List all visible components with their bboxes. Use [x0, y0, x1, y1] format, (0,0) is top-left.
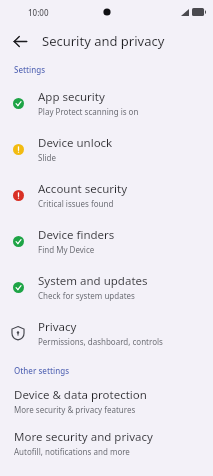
staticText: 10:00	[28, 7, 49, 18]
button[interactable]: App security	[0, 80, 213, 126]
staticText: Autofill, notifications and more	[14, 446, 130, 457]
staticText: System and updates	[38, 273, 148, 289]
button[interactable]: Back	[6, 27, 34, 55]
staticText: Find My Device	[38, 244, 95, 255]
staticText: Critical issues found	[38, 198, 114, 209]
staticText: Permissions, dashboard, controls	[38, 336, 163, 347]
staticText: Slide	[38, 152, 56, 163]
staticText: Device & data protection	[14, 387, 147, 403]
button[interactable]: System and updates	[0, 264, 213, 310]
button[interactable]: More security and privacy	[0, 422, 213, 464]
staticText: App security	[38, 89, 105, 105]
button[interactable]: Device unlock	[0, 126, 213, 172]
staticText: Device finders	[38, 227, 115, 243]
button[interactable]: Privacy	[0, 310, 213, 356]
button[interactable]: Device finders	[0, 218, 213, 264]
staticText: Settings	[14, 64, 46, 75]
button[interactable]: Account security	[0, 172, 213, 218]
staticText: More security & privacy features	[14, 404, 136, 415]
staticText: Other settings	[14, 365, 70, 376]
staticText: Account security	[38, 181, 128, 197]
staticText: More security and privacy	[14, 429, 153, 445]
button[interactable]: Device & data protection	[0, 380, 213, 422]
staticText: Device unlock	[38, 135, 113, 151]
staticText: Security and privacy	[42, 32, 165, 50]
staticText: Privacy	[38, 319, 77, 335]
staticText: Check for system updates	[38, 290, 135, 301]
staticText: Play Protect scanning is on	[38, 106, 139, 117]
